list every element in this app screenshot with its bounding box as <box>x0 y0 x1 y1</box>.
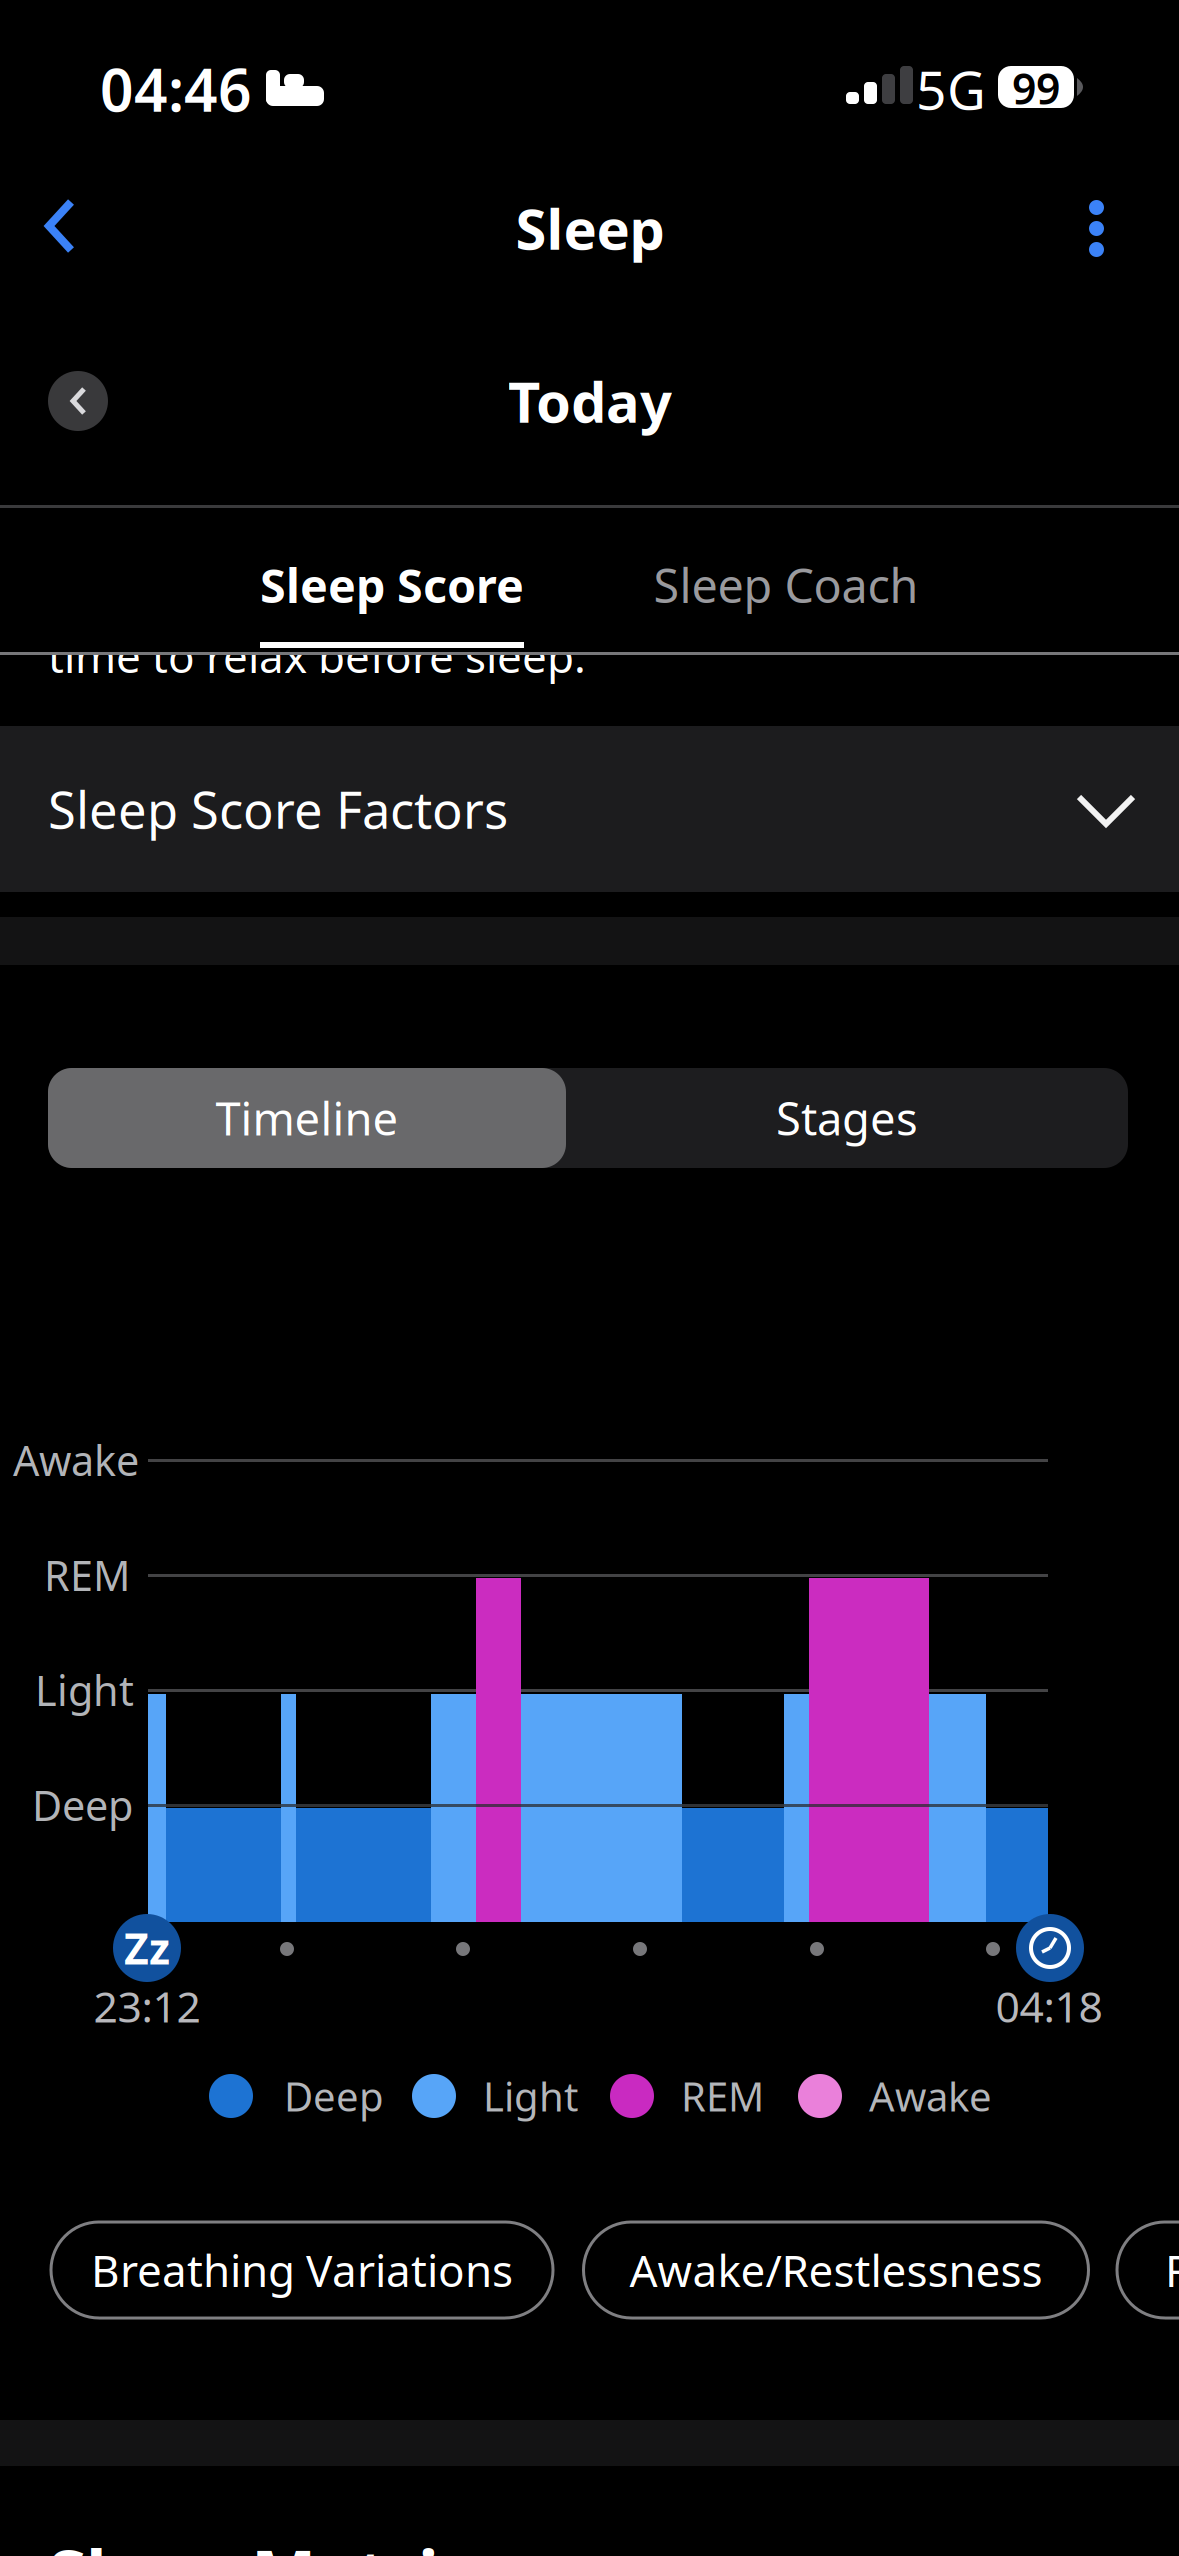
button[interactable] <box>48 1068 1128 1168</box>
button[interactable] <box>48 371 108 431</box>
button[interactable]: Sleep Coach <box>653 554 918 616</box>
staticText: 5G <box>916 54 986 124</box>
staticText: Timeline <box>215 1088 398 1148</box>
button[interactable]: Awake/Restlessness <box>583 2222 1088 2318</box>
staticText: Sleep Score Factors <box>48 775 508 843</box>
staticText: Today <box>508 364 672 438</box>
button[interactable]: Sleep Score Factors <box>0 726 1179 892</box>
staticText: 04:46 <box>100 50 252 128</box>
staticText: Sleep <box>515 191 664 265</box>
staticText: Light <box>35 1663 134 1717</box>
staticText: 04:18 <box>995 1978 1102 2034</box>
staticText: Sleep Coach <box>653 554 918 616</box>
staticText: Sleep Score <box>260 554 524 616</box>
button[interactable]: Breathing Variations <box>51 2222 553 2318</box>
staticText: Deep <box>32 1778 133 1832</box>
staticText: Zz <box>124 1920 170 1976</box>
staticText: REM <box>44 1548 130 1602</box>
button[interactable]: Restless Moments <box>1117 2222 1179 2318</box>
staticText: Light <box>483 2069 578 2122</box>
button[interactable] <box>48 1068 566 1168</box>
staticText: time to relax before sleep. <box>48 627 586 685</box>
staticText: REM <box>681 2069 764 2122</box>
staticText: 99 <box>1012 60 1060 116</box>
staticText: Awake/Restlessness <box>629 2241 1042 2299</box>
staticText: Deep <box>284 2069 384 2122</box>
staticText: Sleep Metrics <box>48 2528 510 2556</box>
staticText: Breathing Variations <box>91 2241 513 2299</box>
button[interactable] <box>0 0 1179 2556</box>
staticText: Restless Moments <box>1165 2241 1179 2299</box>
button[interactable] <box>0 0 1179 2556</box>
staticText: Awake <box>13 1433 139 1487</box>
staticText: Stages <box>776 1088 918 1148</box>
button[interactable]: Sleep Score <box>260 554 524 616</box>
staticText: 23:12 <box>93 1978 200 2034</box>
staticText: Awake <box>869 2069 992 2122</box>
